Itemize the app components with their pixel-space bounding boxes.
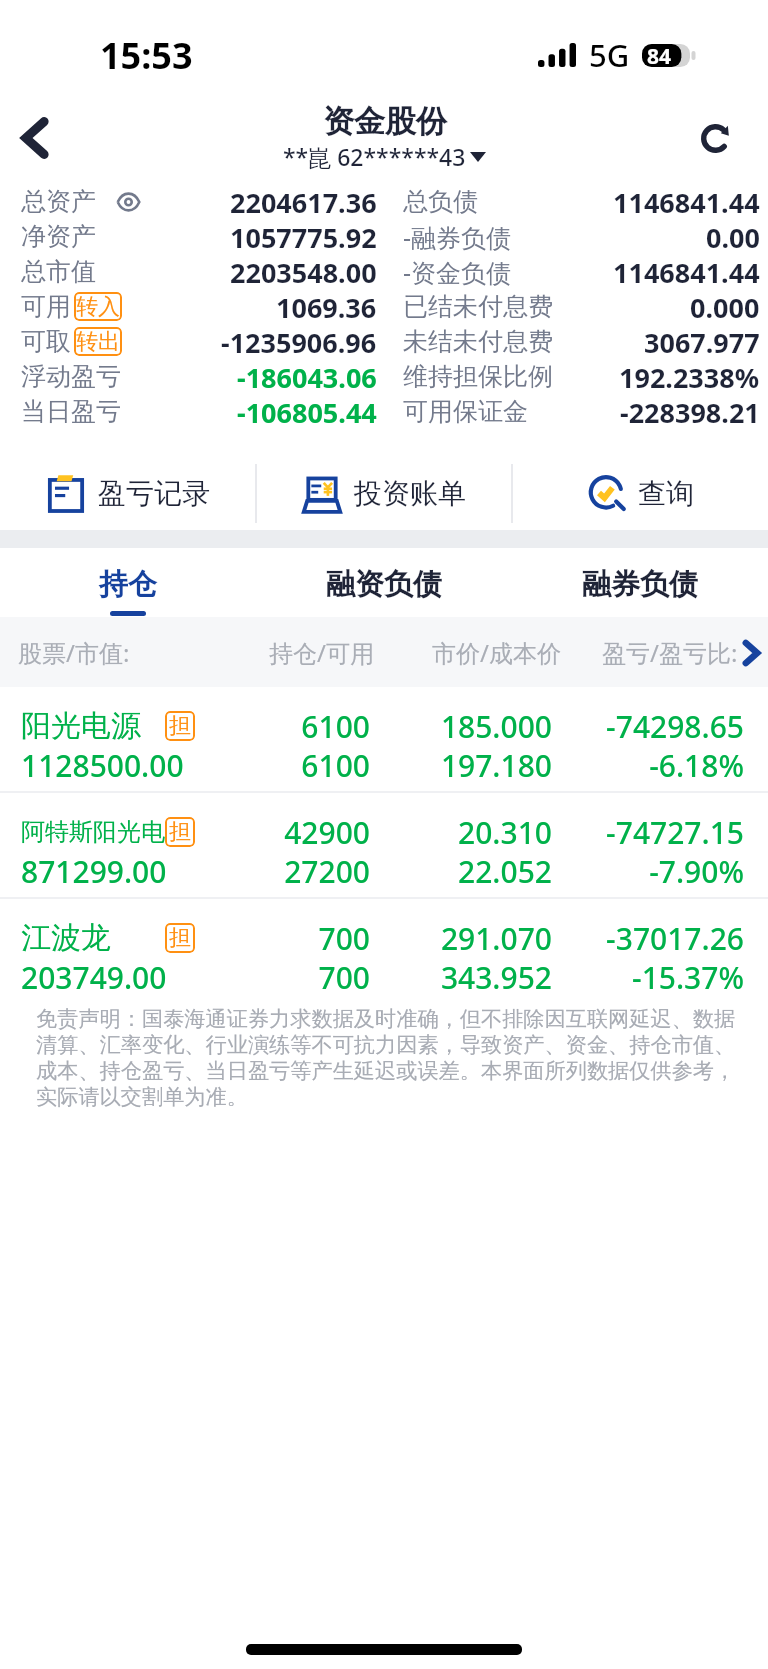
staticText: 阳光电源 [21,707,141,745]
staticText: -106805.44 [237,394,377,429]
staticText: 免责声明：国泰海通证券力求数据及时准确，但不排除因互联网延迟、数据清算、汇率变化… [36,1006,751,1110]
staticText: 1057775.92 [230,219,377,254]
staticText: 700 [252,957,370,998]
staticText: 15:53 [100,31,193,80]
staticText: 2203548.00 [230,254,377,289]
staticText: 股票/市值: [18,636,256,669]
staticText: 192.2338% [619,359,760,394]
staticText: 转出 [76,328,120,356]
staticText: 担 [169,818,191,846]
staticText: 0.000 [690,289,760,324]
staticText: 42900 [252,812,370,853]
staticText: -融券负债 [403,220,512,254]
button[interactable]: Back [0,103,70,173]
staticText: 可用 [21,291,71,322]
button[interactable]: More columns [740,638,762,668]
staticText: 盈亏/盈亏比: [602,636,738,669]
staticText: 融券负债 [582,566,698,603]
staticText: 担 [169,712,191,740]
staticText: 0.00 [706,219,760,254]
staticText: -74298.65 [552,706,744,747]
staticText: 1146841.44 [613,254,760,289]
staticText: 700 [252,918,370,959]
staticText: 总市值 [21,256,96,287]
staticText: 阿特斯阳光电 [21,817,165,847]
button[interactable]: 盈亏记录 [0,429,256,530]
staticText: 1128500.00 [21,745,252,786]
staticText: 1069.36 [276,289,377,324]
staticText: **崑 62******43 [283,141,466,172]
button[interactable]: 查询 [512,429,768,530]
staticText: 当日盈亏 [21,396,121,427]
staticText: -6.18% [552,745,744,786]
staticText: -37017.26 [552,918,744,959]
button[interactable]: 转入 [74,292,122,321]
staticText: 已结未付息费 [403,291,553,322]
staticText: 343.952 [370,957,552,998]
staticText: -1235906.96 [221,324,377,359]
staticText: 20.310 [370,812,552,853]
staticText: 融资负债 [326,566,442,603]
staticText: 22.052 [370,851,552,892]
staticText: 资金股份 [323,102,447,141]
button[interactable]: Toggle visibility [113,190,143,214]
staticText: 未结未付息费 [403,326,553,357]
button[interactable]: 投资账单 [256,429,512,530]
staticText: 27200 [252,851,370,892]
staticText: 总资产 [21,186,96,217]
staticText: 查询 [638,476,694,511]
staticText: 197.180 [370,745,552,786]
staticText: 转入 [76,293,120,321]
staticText: 203749.00 [21,957,252,998]
staticText: 净资产 [21,221,96,252]
staticText: 5G [589,34,630,76]
staticText: -15.37% [552,957,744,998]
button[interactable]: 转出 [74,327,122,356]
button[interactable]: 江波龙 [0,899,768,1003]
button[interactable]: Refresh [677,100,753,176]
staticText: 维持担保比例 [403,361,553,392]
staticText: -228398.21 [620,394,760,429]
button[interactable]: 阿特斯阳光电 [0,793,768,897]
staticText: 可取 [21,326,71,357]
staticText: 可用保证金 [403,396,528,427]
button[interactable]: 持仓 [0,548,256,617]
staticText: -资金负债 [403,255,512,289]
staticText: -74727.15 [552,812,744,853]
staticText: 总负债 [403,186,478,217]
button[interactable]: 融资负债 [256,548,512,617]
staticText: 持仓/可用 [256,636,374,669]
staticText: 3067.977 [644,324,760,359]
staticText: 84 [647,42,672,65]
staticText: 1146841.44 [613,184,760,219]
staticText: 市价/成本价 [374,636,561,669]
staticText: 投资账单 [354,476,466,511]
staticText: 浮动盈亏 [21,361,121,392]
staticText: 6100 [252,706,370,747]
staticText: 185.000 [370,706,552,747]
staticText: 江波龙 [21,919,111,957]
staticText: 871299.00 [21,851,252,892]
staticText: -186043.06 [237,359,377,394]
staticText: 担 [169,924,191,952]
staticText: 盈亏记录 [98,476,210,511]
staticText: 持仓 [99,566,157,603]
staticText: 6100 [252,745,370,786]
staticText: 2204617.36 [230,184,377,219]
staticText: 291.070 [370,918,552,959]
button[interactable]: 阳光电源 [0,687,768,791]
button[interactable]: 融券负债 [512,548,768,617]
staticText: -7.90% [552,851,744,892]
